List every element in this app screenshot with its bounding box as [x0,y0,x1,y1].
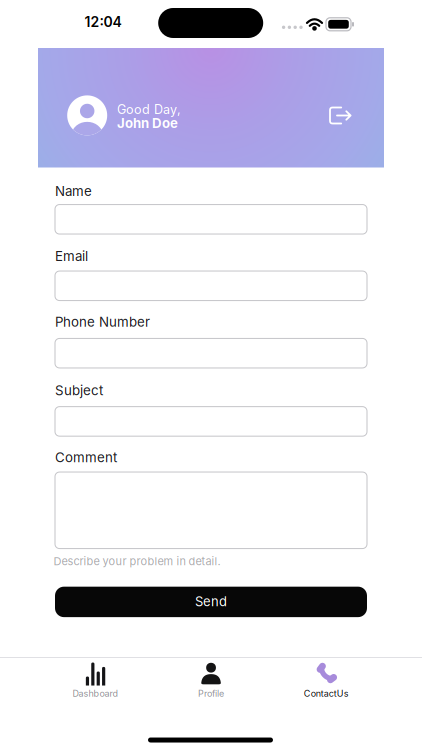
staticText: Subject [55,382,103,398]
staticText: Good Day, [117,102,181,117]
staticText: Profile [198,688,224,699]
button[interactable]: Dashboard [38,660,153,716]
staticText: Phone Number [55,314,150,330]
staticText: Describe your problem in detail. [53,555,220,568]
staticText: Dashboard [72,688,118,699]
button[interactable]: Send [55,587,367,617]
staticText: ContactUs [304,688,349,699]
staticText: Comment [55,449,117,465]
staticText: John Doe [117,115,178,131]
button[interactable]: Profile [153,660,269,716]
staticText: 12:04 [84,13,121,30]
button[interactable]: Log out [329,106,352,124]
staticText: Email [55,248,88,264]
button[interactable]: ContactUs [269,660,384,716]
staticText: Name [55,183,92,199]
staticText: Send [195,593,227,609]
